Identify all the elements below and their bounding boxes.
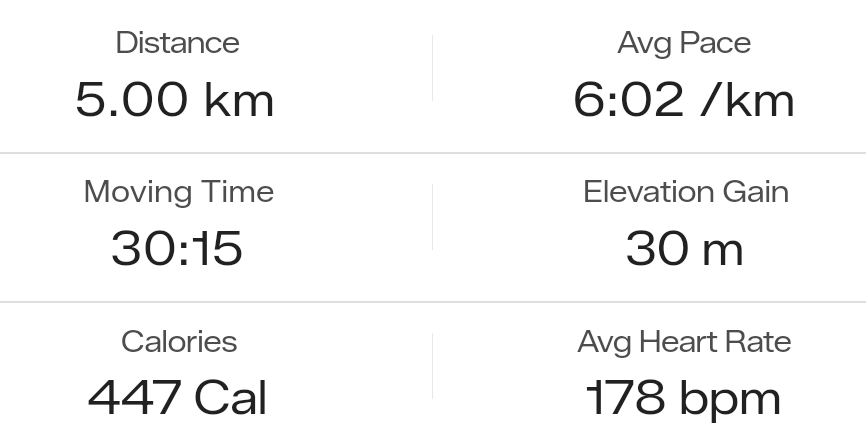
staticText: 447 Cal <box>0 369 387 426</box>
button[interactable]: Distance: 5.00 km <box>0 3 433 152</box>
button[interactable]: Moving Time: 30:15 <box>0 152 433 301</box>
staticText: Moving Time <box>0 173 389 209</box>
staticText: 178 bpm <box>473 369 866 426</box>
staticText: 30 m <box>474 220 866 277</box>
staticText: Elevation Gain <box>476 173 866 209</box>
staticText: Avg Heart Rate <box>474 323 866 359</box>
button[interactable]: Calories: 447 Cal <box>0 301 433 441</box>
button[interactable]: Avg Pace: 6:02 /km <box>433 3 866 152</box>
staticText: 30:15 <box>0 220 387 277</box>
button[interactable]: Elevation Gain: 30 m <box>433 152 866 301</box>
staticText: Calories <box>0 323 389 359</box>
staticText: Distance <box>0 24 387 60</box>
staticText: 6:02 /km <box>474 71 866 128</box>
button[interactable]: Avg Heart Rate: 178 bpm <box>433 301 866 441</box>
staticText: Avg Pace <box>474 24 866 60</box>
staticText: 5.00 km <box>0 71 385 128</box>
